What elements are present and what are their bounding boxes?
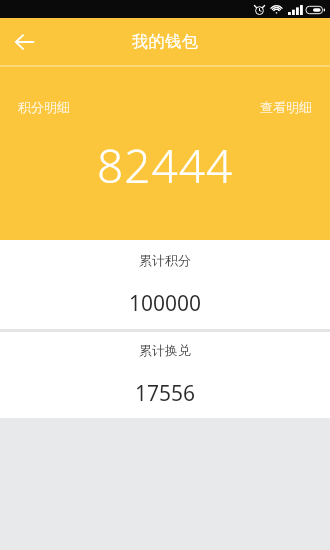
staticText: 82444 [97,134,234,197]
staticText: 积分明细 [18,99,70,115]
button[interactable]: 查看明细 [250,95,330,119]
button[interactable]: Back [0,18,47,65]
staticText: 查看明细 [260,99,312,115]
staticText: 累计换兑 [139,342,191,358]
staticText: 累计积分 [139,252,191,268]
staticText: 我的钱包 [132,32,199,52]
button[interactable]: 累计积分 [0,240,330,329]
staticText: 100000 [129,289,202,318]
button[interactable]: 积分明细 [0,95,80,119]
staticText: 17556 [135,379,196,408]
button[interactable]: 累计换兑 [0,332,330,418]
